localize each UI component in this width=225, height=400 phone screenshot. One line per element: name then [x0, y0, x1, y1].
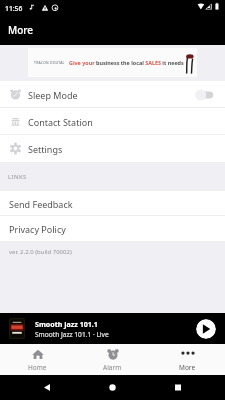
- staticText: ver. 2.2.0 (build 70002): [9, 248, 72, 256]
- staticText: Smooth Jazz 101.1 · Live: [35, 330, 109, 339]
- staticText: TRACON DIGITAL: [34, 60, 65, 65]
- button[interactable]: Play: [196, 319, 216, 339]
- button[interactable]: More: [150, 344, 225, 375]
- staticText: Sleep Mode: [28, 89, 78, 101]
- button[interactable]: Album art: [9, 318, 25, 339]
- staticText: Home: [28, 363, 47, 372]
- staticText: Send Feedback: [9, 198, 73, 210]
- button[interactable]: Sleep Mode toggle: [195, 87, 219, 103]
- staticText: 11:56: [5, 4, 23, 13]
- staticText: Privacy Policy: [9, 223, 66, 235]
- staticText: More: [8, 23, 34, 37]
- staticText: LINKS: [8, 173, 27, 181]
- staticText: Contact Station: [28, 116, 93, 128]
- button[interactable]: Privacy Policy: [0, 216, 225, 241]
- button[interactable]: Sleep Mode: [0, 81, 225, 108]
- button[interactable]: Home: [0, 344, 75, 375]
- staticText: More: [179, 363, 196, 372]
- staticText: Give your business the local SALES it ne…: [69, 59, 184, 66]
- staticText: Smooth Jazz 101.1: [35, 319, 98, 329]
- staticText: Settings: [28, 143, 63, 155]
- button[interactable]: Send Feedback: [0, 191, 225, 216]
- button[interactable]: Settings: [0, 135, 225, 162]
- button[interactable]: Contact Station: [0, 108, 225, 135]
- button[interactable]: Alarm: [75, 344, 150, 375]
- staticText: Alarm: [103, 363, 122, 372]
